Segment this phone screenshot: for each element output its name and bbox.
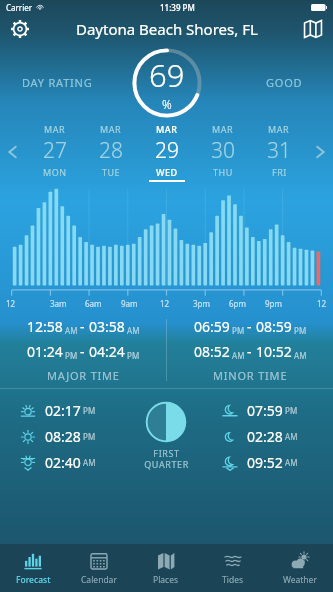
button[interactable]: Next days [307,121,333,183]
staticText: FIRST QUARTER [144,447,189,471]
button[interactable]: Places [132,544,199,592]
staticText: Daytona Beach Shores, FL [76,19,258,39]
staticText: 03:58 [89,317,125,336]
staticText: AM [283,431,298,442]
button[interactable]: MAR [83,121,139,183]
staticText: 12 [317,298,327,309]
staticText: 11:39 PM [160,2,195,13]
staticText: PM [63,350,80,361]
button[interactable]: 06:59 [167,311,333,389]
staticText: AM [125,325,140,336]
staticText: Calendar [81,574,117,586]
staticText: AM [292,350,307,361]
staticText: 01:24 [27,342,63,361]
staticText: 6pm [229,298,246,309]
button[interactable]: Previous days [0,121,26,183]
staticText: 28 [99,136,123,165]
button[interactable]: 02:17 [20,401,96,420]
staticText: PM [81,431,96,442]
staticText: MAR [212,123,234,135]
button[interactable]: MAR [26,121,83,183]
staticText: 6am [85,298,102,309]
staticText: Carrier [6,2,33,13]
staticText: - [247,317,256,336]
staticText: AM [283,457,298,468]
staticText: 07:59 [247,401,283,420]
button[interactable]: MAR [251,121,307,183]
staticText: 06:59 [194,317,230,336]
staticText: MAR [100,123,122,135]
staticText: 12 [6,298,16,309]
button[interactable]: 02:40 [20,453,96,472]
staticText: 08:28 [45,427,81,446]
staticText: 09:52 [247,453,283,472]
staticText: - [247,342,256,361]
staticText: MAR [156,123,178,135]
staticText: PM [125,350,140,361]
button[interactable]: FIRST QUARTER [126,401,206,471]
staticText: PM [230,325,247,336]
staticText: WED [156,166,178,178]
staticText: MAR [268,123,290,135]
staticText: 69 [149,54,185,96]
staticText: 04:24 [89,342,125,361]
button[interactable]: Calendar [66,544,132,592]
staticText: 02:40 [45,453,81,472]
staticText: - [80,342,89,361]
button[interactable]: MAR [195,121,251,183]
staticText: PM [81,405,96,416]
staticText: - [80,317,89,336]
button[interactable]: 07:59 [222,401,298,420]
staticText: MON [43,166,67,178]
staticText: AM [63,325,80,336]
staticText: 27 [43,136,67,165]
staticText: AM [81,457,96,468]
staticText: 3am [50,298,67,309]
staticText: Places [153,574,179,586]
staticText: 29 [155,136,179,165]
staticText: MINOR TIME [213,368,288,383]
staticText: 9pm [265,298,282,309]
button[interactable]: 02:28 [222,427,298,446]
staticText: MAJOR TIME [47,368,120,383]
button[interactable]: 09:52 [222,453,298,472]
staticText: 10:52 [256,342,292,361]
staticText: 12 [160,298,170,309]
button[interactable]: MAR [139,121,195,183]
staticText: PM [283,405,298,416]
button[interactable]: 12:58 [0,311,166,389]
button[interactable]: Weather [266,544,333,592]
button[interactable]: Settings [4,14,36,44]
button[interactable]: Map [297,14,329,44]
staticText: 02:17 [45,401,81,420]
staticText: 08:59 [256,317,292,336]
staticText: 02:28 [247,427,283,446]
staticText: 9am [121,298,138,309]
staticText: GOOD [266,75,303,90]
staticText: 3pm [193,298,210,309]
staticText: FRI [272,166,287,178]
staticText: TUE [102,166,121,178]
staticText: 30 [211,136,235,165]
staticText: MAR [44,123,66,135]
staticText: 31 [267,136,291,165]
staticText: Forecast [16,574,51,586]
staticText: AM [230,350,247,361]
button[interactable]: 08:28 [20,427,96,446]
staticText: 08:52 [194,342,230,361]
staticText: THU [213,166,233,178]
staticText: DAY RATING [22,75,93,90]
staticText: 12:58 [27,317,63,336]
staticText: Tides [222,574,244,586]
button[interactable]: Tides [199,544,266,592]
staticText: % [162,96,172,112]
staticText: PM [292,325,307,336]
button[interactable]: Forecast [0,544,66,592]
staticText: Weather [283,574,317,586]
